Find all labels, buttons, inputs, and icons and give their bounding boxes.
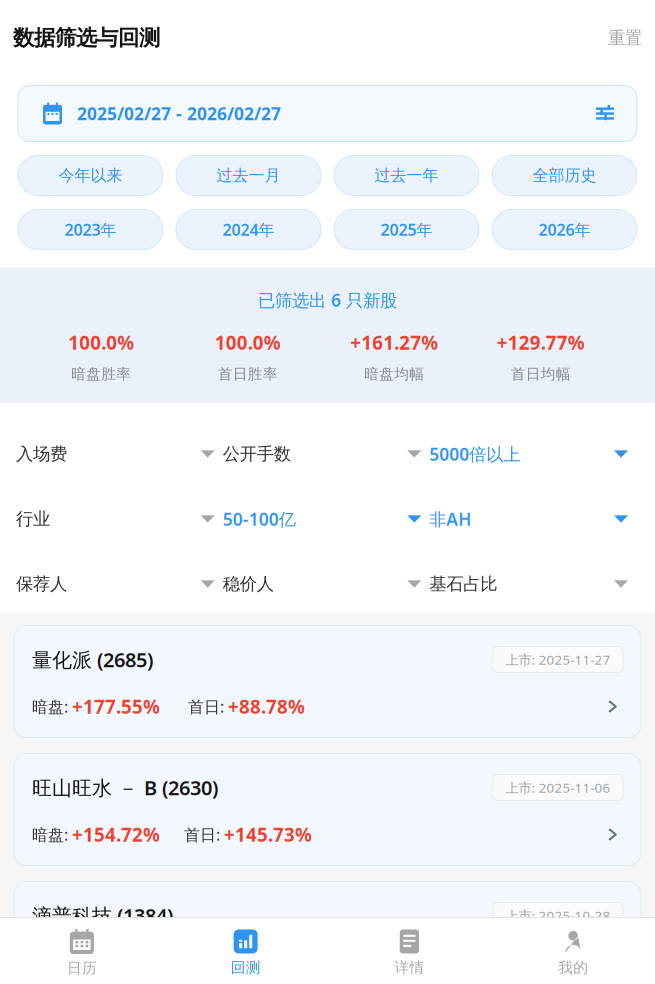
- button[interactable]: 滴普科技 (1384): [14, 881, 641, 984]
- staticText: 过去一月: [216, 166, 280, 185]
- staticText: 2025年: [380, 219, 432, 240]
- button[interactable]: 重置: [608, 27, 642, 49]
- button[interactable]: 2025年: [334, 209, 479, 249]
- button[interactable]: 过去一年: [334, 155, 479, 195]
- staticText: 重置: [608, 27, 642, 49]
- staticText: 首日均幅: [511, 365, 571, 383]
- staticText: 2025/02/27 - 2026/02/27: [77, 102, 281, 125]
- staticText: 已筛选出 6 只新股: [258, 288, 397, 311]
- staticText: 暗盘:: [32, 824, 72, 845]
- staticText: 保荐人: [16, 573, 67, 595]
- staticText: 入场费: [16, 443, 67, 465]
- button[interactable]: 稳价人: [223, 551, 429, 616]
- staticText: 今年以来: [58, 166, 122, 185]
- staticText: 过去一年: [374, 166, 438, 185]
- button[interactable]: 我的: [491, 917, 655, 984]
- staticText: 100.0%: [68, 330, 134, 355]
- button[interactable]: 50-100亿: [223, 486, 429, 551]
- staticText: 滴普科技 (1384): [32, 902, 173, 929]
- button[interactable]: 5000倍以上: [429, 421, 636, 486]
- staticText: 基石占比: [429, 573, 497, 595]
- button[interactable]: 公开手数: [223, 421, 429, 486]
- staticText: +96.60%: [72, 950, 149, 975]
- button[interactable]: 全部历史: [492, 155, 637, 195]
- button[interactable]: 保荐人: [16, 551, 223, 616]
- staticText: 首日胜率: [218, 365, 278, 383]
- staticText: 首日:: [184, 824, 224, 845]
- staticText: 暗盘均幅: [364, 365, 424, 383]
- staticText: 量化派 (2685): [32, 646, 153, 673]
- button[interactable]: 基石占比: [429, 551, 636, 616]
- staticText: 稳价人: [223, 573, 274, 595]
- staticText: 50-100亿: [223, 507, 296, 530]
- staticText: 行业: [16, 508, 50, 530]
- button[interactable]: 2024年: [176, 209, 321, 249]
- staticText: 公开手数: [223, 443, 291, 465]
- staticText: 数据筛选与回测: [13, 25, 160, 51]
- staticText: 上市: 2025-11-06: [505, 779, 610, 796]
- staticText: +177.55%: [72, 694, 160, 719]
- staticText: +154.72%: [72, 822, 160, 847]
- staticText: 回测: [231, 958, 261, 976]
- staticText: 2023年: [64, 219, 116, 240]
- staticText: 上市: 2025-10-28: [505, 907, 610, 924]
- staticText: 暗盘:: [32, 952, 72, 973]
- staticText: 日历: [67, 959, 97, 977]
- staticText: +88.78%: [228, 694, 305, 719]
- button[interactable]: 日历: [0, 917, 164, 984]
- button[interactable]: 2023年: [18, 209, 163, 249]
- staticText: +145.73%: [224, 822, 312, 847]
- staticText: 暗盘:: [32, 696, 72, 717]
- button[interactable]: 回测: [164, 917, 328, 984]
- button[interactable]: 量化派 (2685): [14, 625, 641, 737]
- staticText: 上市: 2025-11-27: [505, 651, 610, 668]
- staticText: 详情: [394, 958, 424, 976]
- staticText: 2024年: [222, 219, 274, 240]
- button[interactable]: 过去一月: [176, 155, 321, 195]
- button[interactable]: 入场费: [16, 421, 223, 486]
- staticText: +61.80%: [217, 950, 294, 975]
- staticText: 首日:: [188, 696, 228, 717]
- staticText: 2026年: [538, 219, 590, 240]
- button[interactable]: 详情: [327, 917, 491, 984]
- staticText: 非AH: [429, 507, 471, 530]
- button[interactable]: 2026年: [492, 209, 637, 249]
- button[interactable]: 旺山旺水 － B (2630): [14, 753, 641, 865]
- staticText: +129.77%: [497, 330, 585, 355]
- button[interactable]: 2025/02/27 - 2026/02/27: [18, 85, 637, 141]
- button[interactable]: 非AH: [429, 486, 636, 551]
- staticText: 我的: [558, 958, 588, 976]
- button[interactable]: 今年以来: [18, 155, 163, 195]
- staticText: +161.27%: [350, 330, 438, 355]
- staticText: 全部历史: [532, 166, 596, 185]
- staticText: 100.0%: [215, 330, 281, 355]
- staticText: 旺山旺水 － B (2630): [32, 774, 218, 801]
- staticText: 暗盘胜率: [71, 365, 131, 383]
- staticText: 5000倍以上: [429, 442, 520, 465]
- button[interactable]: 行业: [16, 486, 223, 551]
